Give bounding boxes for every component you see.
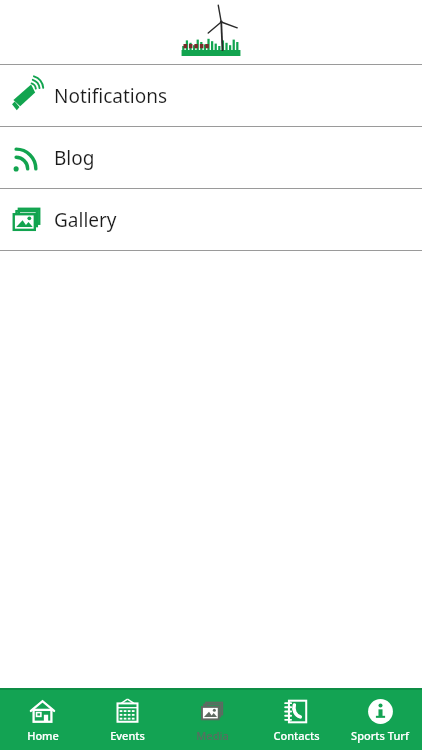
button[interactable]: Media [170,698,254,743]
button[interactable]: Blog [0,127,422,188]
staticText: Events [110,728,145,743]
staticText: Notifications [54,83,168,109]
button[interactable]: Contacts [254,698,338,743]
staticText: Gallery [54,207,117,233]
staticText: Media [196,728,229,743]
staticText: Contacts [273,728,320,743]
button[interactable]: Notifications [0,65,422,126]
staticText: Blog [54,145,95,171]
button[interactable]: Sports Turf [338,698,422,743]
button[interactable]: Events [85,698,170,743]
staticText: Sports Turf [351,728,409,743]
button[interactable]: Gallery [0,189,422,250]
button[interactable]: Home [0,698,85,743]
staticText: Home [27,728,59,743]
